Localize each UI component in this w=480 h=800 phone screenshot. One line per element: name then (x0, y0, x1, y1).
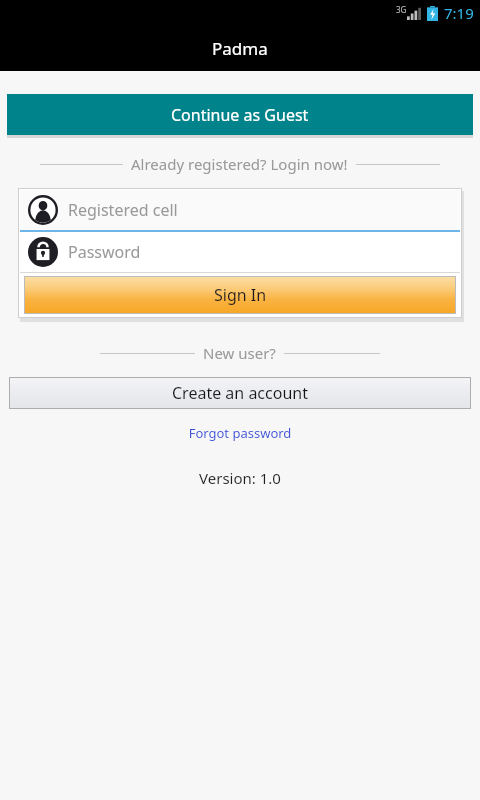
staticText: Password (68, 241, 141, 263)
button[interactable]: Sign In (24, 276, 456, 314)
staticText: 7:19 (444, 3, 474, 23)
staticText: Sign In (214, 284, 267, 306)
staticText: Create an account (172, 382, 308, 404)
staticText: Forgot password (0, 424, 480, 442)
other: User (28, 195, 58, 225)
staticText: Continue as Guest (171, 104, 309, 126)
staticText: Version: 1.0 (0, 468, 480, 488)
button[interactable]: Continue as Guest (7, 94, 473, 135)
staticText: Already registered? Login now! (131, 154, 348, 174)
staticText: New user? (203, 343, 276, 363)
other: Password (28, 237, 58, 267)
staticText: Registered cell (68, 199, 178, 221)
button[interactable]: Forgot password (0, 420, 480, 446)
staticText: Padma (212, 37, 268, 60)
staticText: 3G (396, 4, 407, 15)
button[interactable]: Create an account (9, 377, 471, 409)
button[interactable]: User (20, 190, 460, 230)
button[interactable]: Password (20, 232, 460, 272)
